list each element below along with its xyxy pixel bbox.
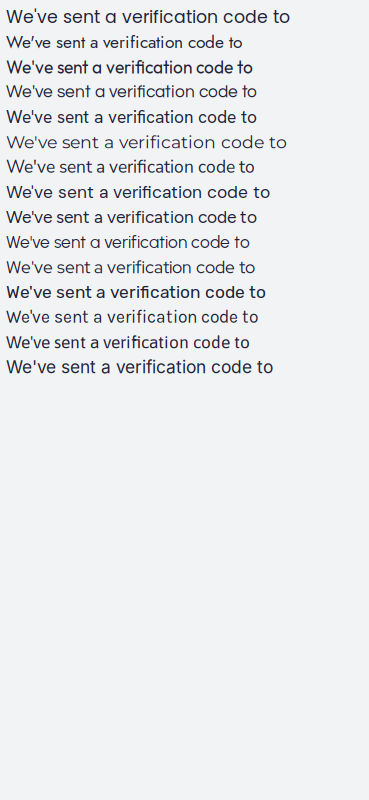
staticText: We've sent a verification code to [6,5,290,29]
staticText: We've sent a verification code to [6,332,250,352]
staticText: We've sent a verification code to [6,155,255,179]
staticText: We've sent a verification code to [6,106,257,128]
staticText: We've sent a verification code to [6,282,266,302]
staticText: We've sent a verification code to [6,29,242,54]
staticText: We've sent a verification code to [6,255,255,278]
staticText: We've sent a verification code to [6,307,258,327]
staticText: We've sent a verification code to [6,356,273,377]
staticText: We've sent a verification code to [6,232,250,252]
staticText: We've sent a verification code to [6,131,287,152]
staticText: We've sent a verification code to [6,56,253,78]
staticText: We've sent a verification code to [6,181,270,203]
staticText: We've sent a verification code to [6,207,257,227]
staticText: We've sent a verification code to [6,83,257,101]
